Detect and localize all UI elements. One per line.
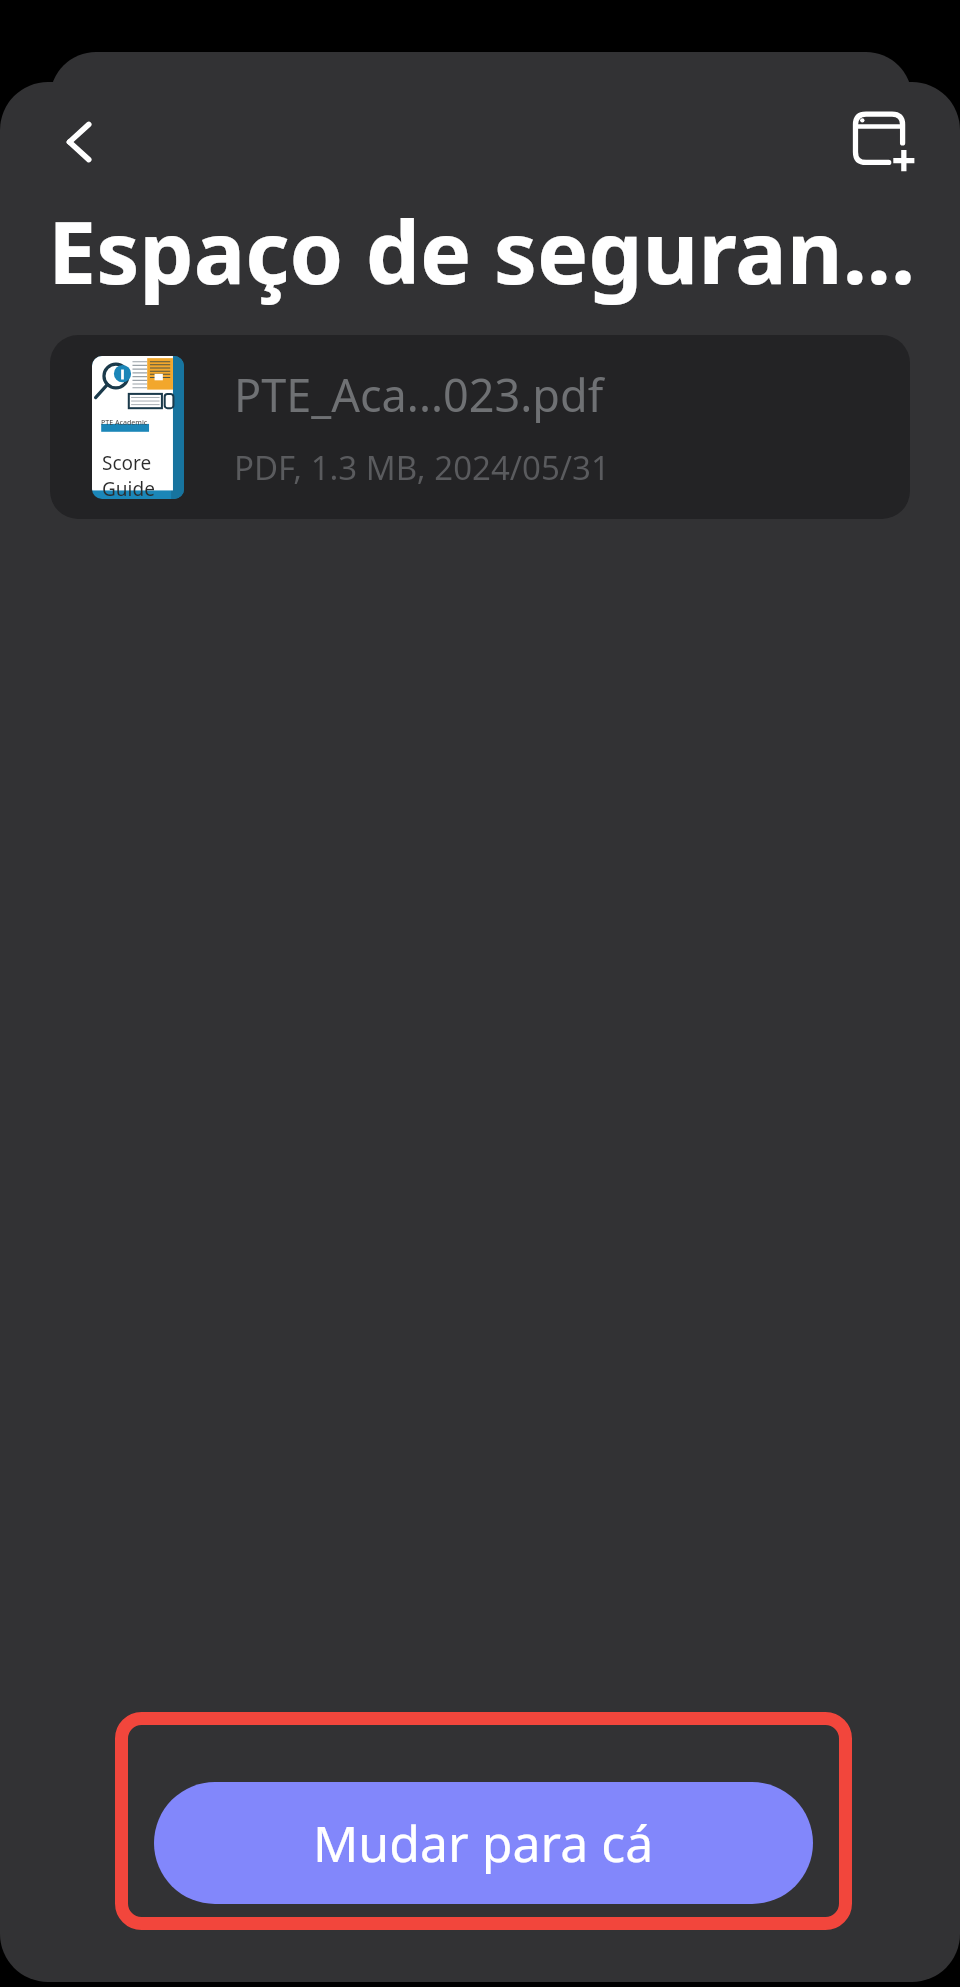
staticText: Guide	[102, 476, 155, 499]
button[interactable]: Back	[36, 98, 124, 186]
staticText: Test Taker	[102, 429, 158, 444]
staticText: PTE Academic	[101, 418, 148, 428]
staticText: Score	[102, 450, 152, 476]
staticText: Espaço de seguran...	[48, 192, 916, 309]
staticText: PTE_Aca...023.pdf	[234, 364, 604, 425]
button[interactable]: Mudar para cá	[154, 1782, 813, 1904]
staticText: Mudar para cá	[313, 1809, 654, 1877]
button[interactable]: New window	[836, 94, 932, 190]
staticText: PDF, 1.3 MB, 2024/05/31	[234, 445, 610, 490]
button[interactable]: PTE Academic	[50, 335, 910, 519]
